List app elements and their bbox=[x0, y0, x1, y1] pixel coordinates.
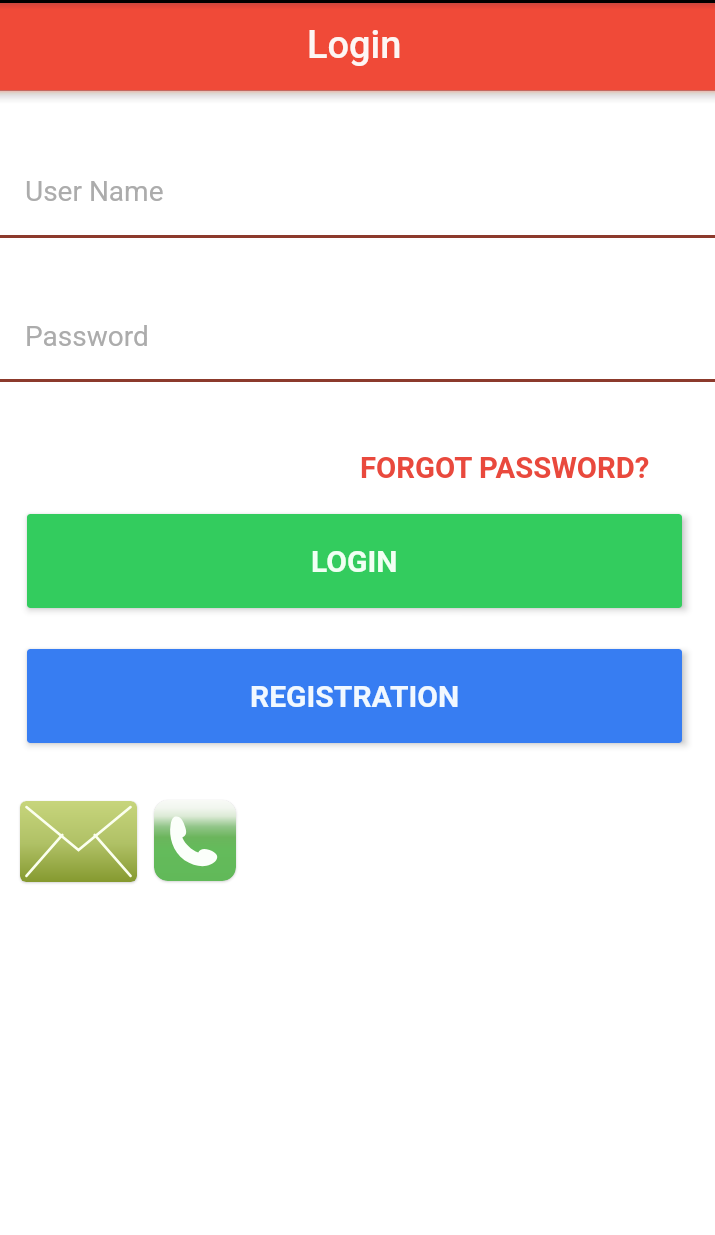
button[interactable]: Call bbox=[154, 800, 236, 881]
button[interactable]: REGISTRATION bbox=[27, 649, 682, 743]
button[interactable]: User Name bbox=[0, 145, 715, 238]
staticText: REGISTRATION bbox=[250, 679, 460, 714]
staticText: User Name bbox=[25, 175, 164, 208]
staticText: LOGIN bbox=[311, 544, 398, 579]
button[interactable]: LOGIN bbox=[27, 514, 682, 608]
button[interactable]: Email bbox=[20, 801, 137, 882]
button[interactable]: FORGOT PASSWORD? bbox=[346, 441, 664, 495]
staticText: FORGOT PASSWORD? bbox=[360, 451, 650, 485]
button[interactable]: Password bbox=[0, 289, 715, 382]
staticText: Password bbox=[25, 320, 149, 353]
staticText: Login bbox=[307, 23, 402, 68]
